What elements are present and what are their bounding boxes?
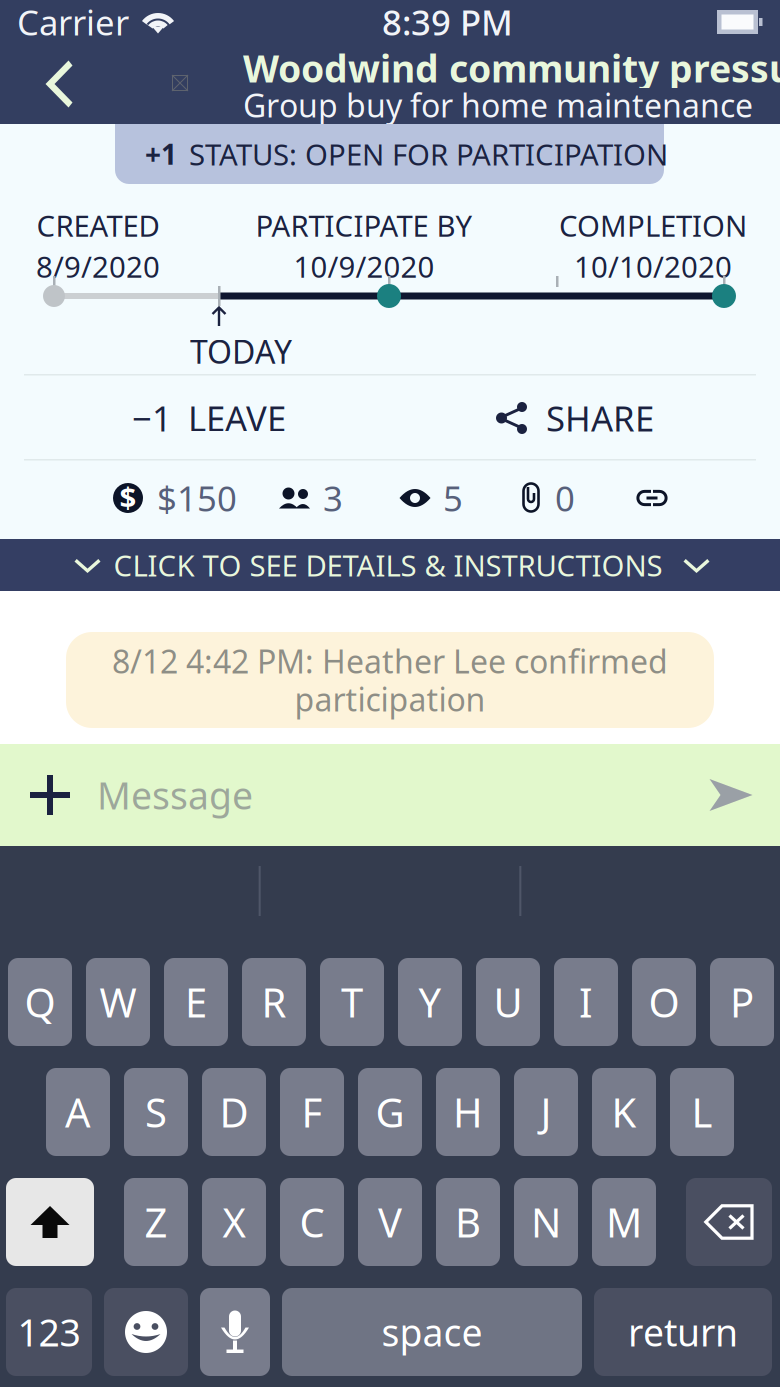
button[interactable]: N bbox=[514, 1178, 578, 1266]
staticText: PARTICIPATE BY bbox=[255, 206, 472, 245]
staticText: O bbox=[648, 975, 679, 1028]
staticText: 10/9/2020 bbox=[293, 247, 434, 286]
staticText: M bbox=[606, 1195, 642, 1248]
button[interactable]: 123 bbox=[6, 1288, 92, 1376]
staticText: J bbox=[540, 1085, 551, 1138]
staticText: Group buy for home maintenance bbox=[243, 84, 753, 126]
button[interactable]: Send bbox=[686, 744, 776, 846]
button[interactable]: return bbox=[594, 1288, 772, 1376]
staticText: Y bbox=[418, 975, 441, 1028]
button[interactable]: Dictation bbox=[200, 1288, 270, 1376]
staticText: 5 bbox=[443, 475, 463, 521]
staticText: $150 bbox=[157, 475, 237, 521]
staticText: Z bbox=[144, 1195, 167, 1248]
staticText: T bbox=[341, 975, 363, 1028]
button[interactable]: Copy link bbox=[634, 460, 670, 536]
staticText: 3 bbox=[323, 475, 343, 521]
staticText: U bbox=[493, 975, 522, 1028]
button[interactable]: X bbox=[202, 1178, 266, 1266]
button[interactable]: O bbox=[632, 958, 696, 1046]
button[interactable]: CLICK TO SEE DETAILS & INSTRUCTIONS bbox=[0, 539, 780, 591]
button[interactable]: Emoji bbox=[104, 1288, 188, 1376]
button[interactable]: T bbox=[320, 958, 384, 1046]
staticText: STATUS: OPEN FOR PARTICIPATION bbox=[189, 134, 668, 173]
button[interactable]: A bbox=[46, 1068, 110, 1156]
button[interactable]: Back bbox=[26, 44, 92, 124]
button[interactable]: +1 bbox=[115, 124, 664, 184]
button[interactable]: S bbox=[124, 1068, 188, 1156]
button[interactable]: B bbox=[436, 1178, 500, 1266]
button[interactable]: 3 bbox=[279, 460, 343, 536]
staticText: $ bbox=[119, 477, 136, 516]
button[interactable]: K bbox=[592, 1068, 656, 1156]
button[interactable]: Delete bbox=[686, 1178, 772, 1266]
staticText: W bbox=[99, 975, 136, 1028]
button[interactable]: U bbox=[476, 958, 540, 1046]
staticText: CREATED bbox=[36, 206, 159, 245]
staticText: B bbox=[455, 1195, 481, 1248]
button[interactable]: G bbox=[358, 1068, 422, 1156]
button[interactable]: V bbox=[358, 1178, 422, 1266]
staticText: 0 bbox=[555, 475, 575, 521]
button[interactable]: 5 bbox=[399, 460, 463, 536]
staticText: F bbox=[301, 1085, 322, 1138]
staticText: 8/12 4:42 PM: Heather Lee confirmed bbox=[112, 640, 668, 682]
staticText: Woodwind community pressure washer bbox=[243, 43, 780, 93]
staticText: 8:39 PM bbox=[382, 0, 513, 45]
button[interactable]: SHARE bbox=[390, 376, 760, 460]
staticText: Carrier bbox=[17, 0, 129, 45]
button[interactable]: M bbox=[592, 1178, 656, 1266]
staticText: COMPLETION bbox=[559, 206, 747, 245]
button[interactable]: space bbox=[282, 1288, 582, 1376]
staticText: G bbox=[375, 1085, 404, 1138]
staticText: −1 bbox=[132, 395, 172, 441]
button[interactable]: E bbox=[164, 958, 228, 1046]
button[interactable]: Q bbox=[8, 958, 72, 1046]
staticText: H bbox=[453, 1085, 483, 1138]
button[interactable]: J bbox=[514, 1068, 578, 1156]
staticText: K bbox=[611, 1085, 636, 1138]
button[interactable]: W bbox=[86, 958, 150, 1046]
button[interactable]: Add attachment bbox=[12, 744, 88, 846]
staticText: +1 bbox=[145, 135, 177, 173]
button[interactable]: R bbox=[242, 958, 306, 1046]
staticText: 10/10/2020 bbox=[574, 247, 732, 286]
button[interactable]: L bbox=[670, 1068, 734, 1156]
staticText: space bbox=[381, 1307, 482, 1357]
staticText: E bbox=[185, 975, 207, 1028]
staticText: 8/9/2020 bbox=[36, 247, 160, 286]
button[interactable]: Shift bbox=[6, 1178, 94, 1266]
staticText: Message bbox=[97, 770, 253, 820]
staticText: S bbox=[145, 1085, 167, 1138]
staticText: CLICK TO SEE DETAILS & INSTRUCTIONS bbox=[113, 545, 662, 584]
image bbox=[172, 75, 188, 91]
button[interactable]: 0 bbox=[519, 460, 575, 536]
staticText: participation bbox=[294, 678, 485, 720]
button[interactable]: Z bbox=[124, 1178, 188, 1266]
staticText: P bbox=[730, 975, 754, 1028]
staticText: V bbox=[378, 1195, 402, 1248]
button[interactable]: Message bbox=[97, 744, 677, 846]
button[interactable]: P bbox=[710, 958, 774, 1046]
staticText: Q bbox=[24, 975, 55, 1028]
staticText: L bbox=[691, 1085, 712, 1138]
button[interactable]: Y bbox=[398, 958, 462, 1046]
staticText: N bbox=[531, 1195, 561, 1248]
button[interactable]: Group photo bbox=[147, 50, 213, 116]
button[interactable]: F bbox=[280, 1068, 344, 1156]
button[interactable]: C bbox=[280, 1178, 344, 1266]
button[interactable]: $ bbox=[113, 460, 237, 536]
staticText: R bbox=[261, 975, 286, 1028]
staticText: X bbox=[222, 1195, 245, 1248]
button[interactable]: I bbox=[554, 958, 618, 1046]
staticText: D bbox=[219, 1085, 248, 1138]
button[interactable]: D bbox=[202, 1068, 266, 1156]
staticText: 123 bbox=[17, 1307, 80, 1357]
staticText: TODAY bbox=[190, 330, 292, 372]
button[interactable]: H bbox=[436, 1068, 500, 1156]
staticText: LEAVE bbox=[188, 395, 286, 441]
button[interactable]: −1 bbox=[24, 376, 394, 460]
staticText: return bbox=[628, 1307, 738, 1357]
staticText: I bbox=[579, 975, 593, 1028]
staticText: A bbox=[65, 1085, 91, 1138]
